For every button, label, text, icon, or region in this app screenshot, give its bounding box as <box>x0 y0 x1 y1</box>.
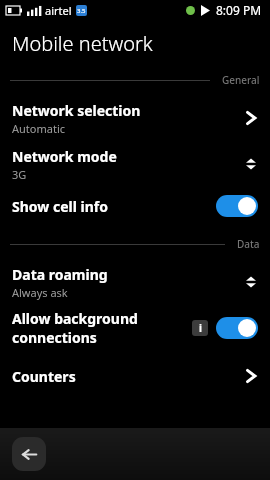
staticText: Always ask <box>12 285 68 300</box>
staticText: Network mode <box>12 147 117 166</box>
staticText: Data <box>237 237 260 251</box>
button[interactable]: Toggle <box>216 195 258 217</box>
other: Select value <box>244 272 258 292</box>
staticText: 3.5 <box>77 7 86 15</box>
staticText: Allow background connections <box>12 309 192 347</box>
staticText: airtel <box>45 3 72 18</box>
button[interactable]: Back <box>12 437 46 471</box>
button[interactable]: Network selection <box>0 95 270 141</box>
button[interactable]: Data roaming <box>0 259 270 305</box>
staticText: i <box>199 321 202 335</box>
staticText: Automatic <box>12 121 65 136</box>
staticText: 3G <box>12 167 27 182</box>
button[interactable]: Info <box>192 320 208 336</box>
button[interactable]: Network mode <box>0 141 270 187</box>
staticText: Mobile network <box>12 30 153 57</box>
button[interactable]: Toggle <box>216 317 258 339</box>
staticText: 8:09 PM <box>216 2 262 18</box>
staticText: Counters <box>12 367 76 386</box>
staticText: General <box>222 73 260 87</box>
other: Open <box>244 108 258 128</box>
staticText: Network selection <box>12 101 141 120</box>
staticText: Data roaming <box>12 265 108 284</box>
button[interactable]: Counters <box>0 357 270 395</box>
staticText: Show cell info <box>12 197 216 216</box>
other: Select value <box>244 154 258 174</box>
button[interactable]: Allow background connections <box>0 305 270 351</box>
other: Open <box>244 366 258 386</box>
button[interactable]: Show cell info <box>0 187 270 225</box>
